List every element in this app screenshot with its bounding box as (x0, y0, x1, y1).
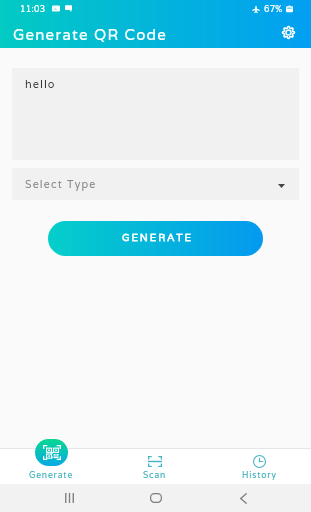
button[interactable]: Settings (276, 20, 300, 44)
staticText: Generate QR Code (13, 25, 168, 44)
button[interactable]: Select Type (12, 168, 299, 200)
staticText: History (242, 469, 277, 480)
staticText: Select Type (25, 177, 97, 191)
staticText: 11:03 (20, 3, 46, 14)
button[interactable]: hello (12, 68, 299, 160)
button[interactable]: Scan (103, 448, 207, 484)
button[interactable]: GENERATE (48, 221, 263, 256)
button[interactable]: Recents (49, 484, 89, 512)
staticText: hello (25, 77, 56, 91)
button[interactable]: History (207, 448, 311, 484)
button[interactable]: Generate (0, 448, 103, 484)
staticText: 67% (264, 3, 283, 14)
staticText: Generate (29, 469, 74, 480)
staticText: GENERATE (122, 231, 193, 244)
staticText: Scan (143, 469, 167, 480)
button[interactable]: Home (136, 484, 176, 512)
button[interactable]: Back (223, 484, 263, 512)
